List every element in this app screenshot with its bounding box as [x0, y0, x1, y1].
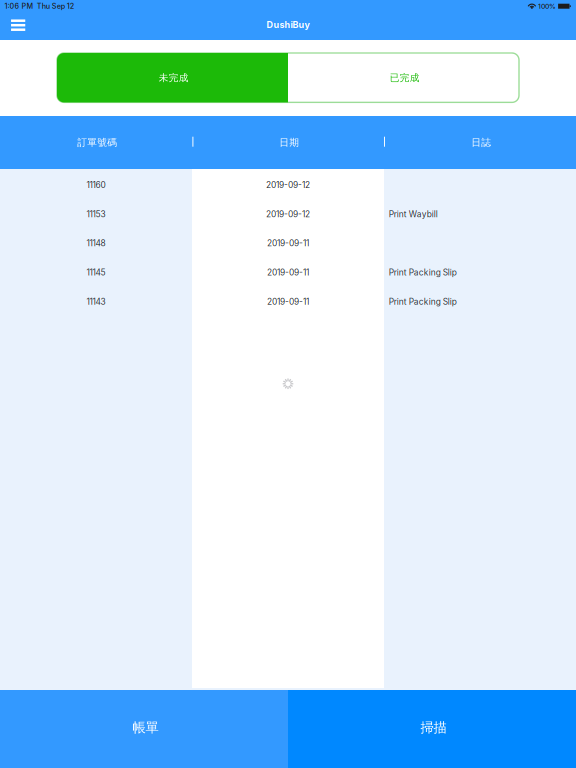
- staticText: 日期: [279, 136, 299, 149]
- staticText: 11145: [86, 267, 105, 278]
- button[interactable]: 掃描: [288, 690, 576, 768]
- staticText: 2019-09-12: [266, 209, 310, 219]
- staticText: 掃描: [420, 719, 446, 736]
- staticText: 11160: [86, 180, 105, 190]
- staticText: 100%: [538, 2, 556, 10]
- button[interactable]: 已完成: [288, 53, 519, 102]
- button[interactable]: 11153: [0, 199, 576, 229]
- staticText: Print Waybill: [389, 209, 438, 219]
- staticText: DushiBuy: [266, 19, 309, 30]
- button[interactable]: 11145: [0, 258, 576, 287]
- staticText: 日誌: [471, 136, 491, 149]
- staticText: 2019-09-11: [267, 267, 309, 278]
- staticText: 帳單: [132, 719, 158, 736]
- button[interactable]: 未完成: [57, 53, 288, 102]
- button[interactable]: 11148: [0, 229, 576, 258]
- staticText: 2019-09-11: [267, 297, 309, 307]
- staticText: 1:06 PM: [4, 2, 33, 10]
- staticText: 11153: [86, 209, 105, 219]
- staticText: 2019-09-11: [267, 238, 309, 248]
- button[interactable]: 11143: [0, 287, 576, 316]
- button[interactable]: Menu: [4, 12, 32, 38]
- staticText: Print Packing Slip: [389, 267, 457, 278]
- staticText: 訂單號碼: [77, 136, 117, 149]
- staticText: Thu Sep 12: [37, 2, 74, 10]
- staticText: 2019-09-12: [266, 180, 310, 190]
- button[interactable]: 11160: [0, 170, 576, 199]
- staticText: 已完成: [390, 72, 420, 84]
- button[interactable]: 帳單: [0, 690, 288, 768]
- staticText: 11148: [86, 238, 105, 248]
- staticText: Print Packing Slip: [389, 297, 457, 307]
- staticText: 未完成: [159, 72, 189, 84]
- staticText: 11143: [86, 297, 105, 307]
